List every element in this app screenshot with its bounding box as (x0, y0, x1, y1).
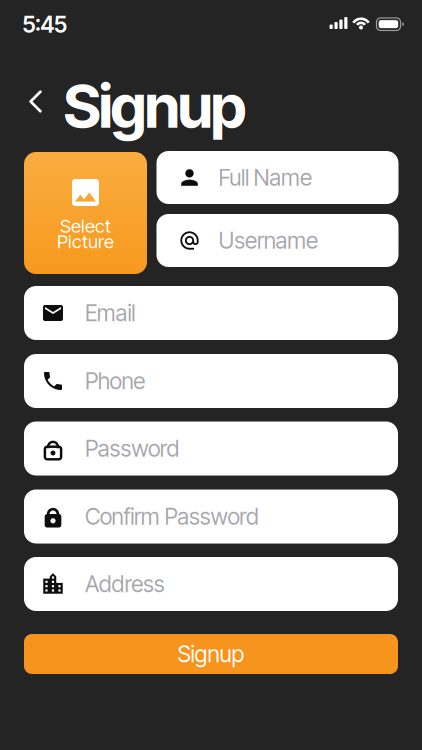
staticText: Address (85, 571, 165, 597)
staticText: Username (218, 227, 318, 254)
textField[interactable]: Address (24, 557, 398, 611)
staticText: 5:45 (22, 11, 67, 38)
staticText: Full Name (218, 164, 312, 191)
staticText: Phone (85, 368, 145, 394)
textField[interactable]: Confirm Password (24, 489, 398, 543)
staticText: Select (60, 215, 111, 237)
staticText: Confirm Password (85, 503, 259, 530)
staticText: Signup (63, 71, 246, 141)
textField[interactable]: Full Name (156, 151, 398, 204)
staticText: Picture (57, 230, 114, 252)
staticText: Password (85, 435, 180, 462)
textField[interactable]: Username (156, 214, 398, 267)
textField[interactable]: Password (24, 421, 398, 475)
staticText: Email (85, 300, 135, 326)
textField[interactable]: Phone (24, 354, 398, 408)
button[interactable]: Select Picture (24, 152, 147, 274)
staticText: Signup (177, 641, 244, 667)
button[interactable]: Signup (24, 634, 398, 674)
button[interactable]: Back (15, 81, 55, 121)
textField[interactable]: Email (24, 286, 398, 340)
